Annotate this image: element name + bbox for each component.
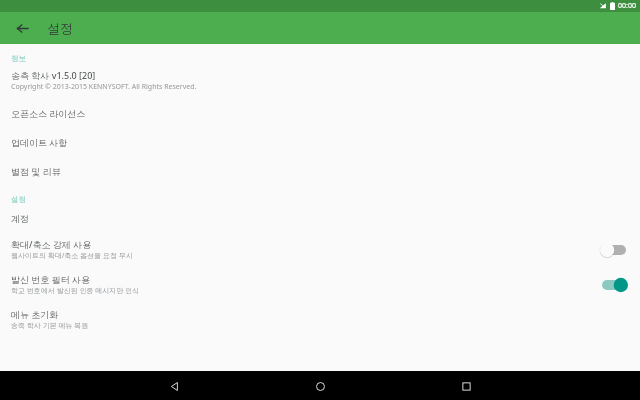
button[interactable]: 별점 및 리뷰 [0, 161, 640, 181]
staticText: 확대/축소 강제 사용 [11, 238, 92, 250]
button[interactable]: 계정 [0, 208, 640, 228]
staticText: 설정 [47, 20, 73, 36]
button[interactable]: 송측 학사 v1.5.0 [20] [0, 67, 640, 94]
staticText: 정보 [11, 54, 26, 63]
staticText: 별점 및 리뷰 [11, 165, 61, 177]
button[interactable]: Back [11, 17, 33, 39]
staticText: 학교 번호에서 발신된 인증 메시지만 인식 [11, 286, 140, 296]
staticText: 계정 [11, 213, 29, 224]
button[interactable]: On [598, 275, 630, 295]
staticText: 설정 [11, 195, 26, 204]
staticText: 발신 번호 필터 사용 [11, 273, 91, 285]
button[interactable]: Off [598, 240, 630, 260]
button[interactable]: 확대/축소 강제 사용 [0, 236, 640, 263]
staticText: 00:00 [618, 1, 636, 11]
button[interactable]: Home [307, 373, 333, 399]
staticText: 송측 학사 v1.5.0 [20] [11, 69, 96, 81]
button[interactable]: 발신 번호 필터 사용 [0, 271, 640, 298]
staticText: 송죽 학사 기본 메뉴 복원 [11, 321, 89, 331]
button[interactable]: 오픈소스 라이선스 [0, 103, 640, 123]
button[interactable]: Recent apps [453, 373, 479, 399]
button[interactable]: 메뉴 초기화 [0, 306, 640, 333]
button[interactable]: Back [161, 373, 187, 399]
staticText: Copyright © 2013-2015 KENNYSOFT. All Rig… [11, 82, 197, 92]
staticText: 업데이트 사항 [11, 136, 68, 148]
button[interactable]: 업데이트 사항 [0, 132, 640, 152]
staticText: 오픈소스 라이선스 [11, 107, 86, 119]
staticText: 웹사이트의 확대/축소 옵션을 요청 무시 [11, 251, 133, 261]
staticText: 메뉴 초기화 [11, 308, 59, 320]
